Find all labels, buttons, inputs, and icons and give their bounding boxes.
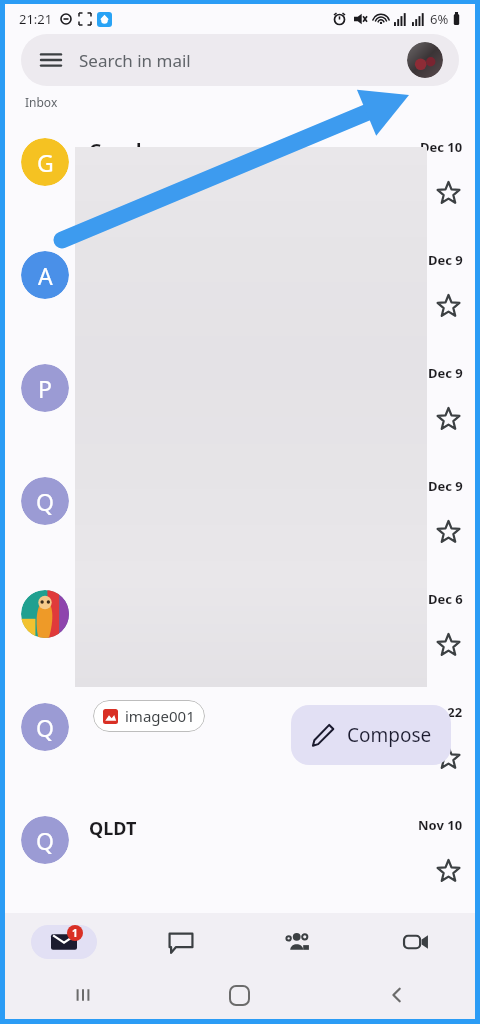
button[interactable]: Open navigation menu xyxy=(21,34,459,86)
button[interactable]: Star message xyxy=(433,517,463,547)
staticText: Dec 6 xyxy=(428,590,463,608)
button[interactable]: Star message xyxy=(433,743,463,773)
button[interactable]: Spaces xyxy=(239,913,357,971)
staticText: P xyxy=(38,373,52,404)
button[interactable]: Home xyxy=(161,971,318,1019)
button[interactable]: Meet xyxy=(357,913,475,971)
button[interactable]: image001 xyxy=(93,700,205,732)
button[interactable]: Star message xyxy=(433,178,463,208)
button[interactable]: Account profile xyxy=(407,42,443,78)
button[interactable]: Back xyxy=(318,971,475,1019)
staticText: 21:21 xyxy=(19,10,53,28)
button[interactable]: Chat xyxy=(122,913,239,971)
button[interactable]: P xyxy=(5,348,475,461)
staticText: Q xyxy=(36,825,54,856)
staticText: Q xyxy=(36,712,54,743)
staticText: Search in mail xyxy=(79,49,191,72)
button[interactable]: Q xyxy=(5,800,475,913)
staticText: A new sign-in on Windows tienltse14007… xyxy=(89,191,384,211)
button[interactable]: Recent apps xyxy=(5,971,161,1019)
button[interactable]: Open navigation menu xyxy=(37,46,65,74)
staticText: Dec 9 xyxy=(428,477,463,495)
staticText: Security alert xyxy=(89,166,197,188)
staticText: QLDT xyxy=(89,816,137,841)
staticText: Inbox xyxy=(25,94,58,110)
staticText: Dec 9 xyxy=(428,251,463,269)
button[interactable]: Dec 6 xyxy=(5,574,475,687)
staticText: G xyxy=(37,147,54,178)
staticText: 6% xyxy=(430,10,449,28)
staticText: Google xyxy=(89,138,153,163)
button[interactable]: Star message xyxy=(433,630,463,660)
button[interactable]: Star message xyxy=(433,404,463,434)
button[interactable]: Mail xyxy=(5,913,122,971)
button[interactable]: Q xyxy=(5,687,475,800)
button[interactable]: Q xyxy=(5,461,475,574)
button[interactable]: Compose xyxy=(291,705,451,765)
button[interactable]: Star message xyxy=(433,856,463,886)
staticText: 1 xyxy=(72,926,78,940)
button[interactable]: A xyxy=(5,235,475,348)
staticText: image001 xyxy=(125,706,195,726)
button[interactable]: G xyxy=(5,122,475,235)
staticText: Dec 9 xyxy=(428,364,463,382)
staticText: Q xyxy=(36,486,54,517)
staticText: Nov 22 xyxy=(418,703,463,721)
staticText: Nov 10 xyxy=(418,816,463,834)
staticText: Dec 10 xyxy=(420,138,463,156)
staticText: A xyxy=(38,260,53,291)
staticText: Compose xyxy=(347,722,432,748)
button[interactable]: Star message xyxy=(433,291,463,321)
